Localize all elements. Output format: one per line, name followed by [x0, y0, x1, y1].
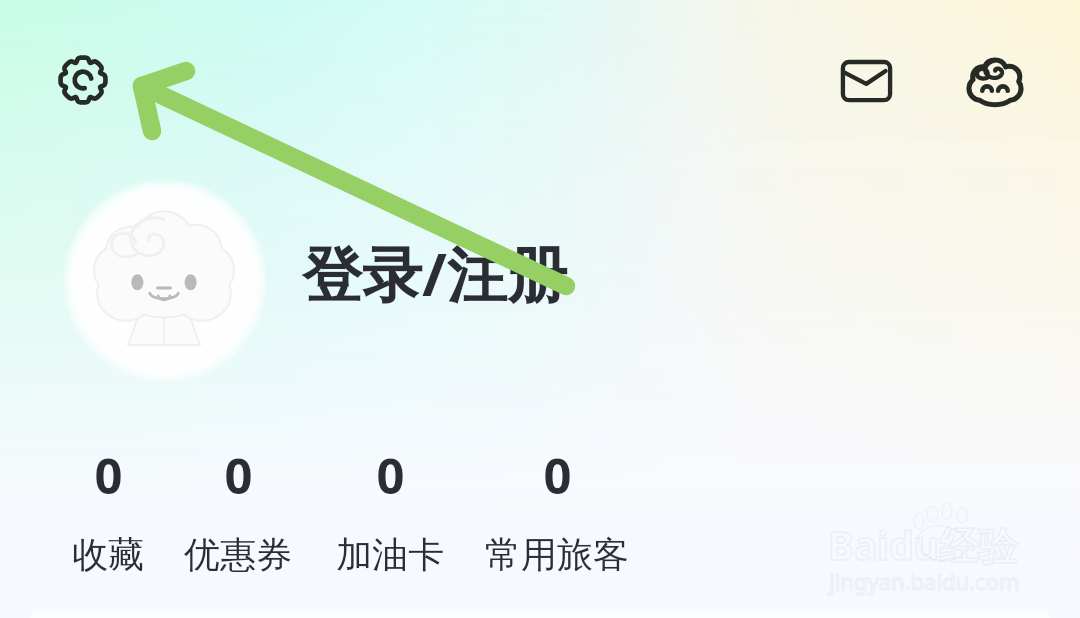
staticText: 常用旅客 — [485, 532, 629, 572]
button[interactable]: 登录/注册 — [300, 232, 569, 314]
staticText: 加油卡 — [336, 532, 444, 572]
staticText: 0 — [543, 442, 572, 509]
button[interactable]: 0 — [467, 442, 647, 572]
staticText: 优惠券 — [184, 532, 292, 572]
staticText: Baidu经验 — [828, 518, 1017, 571]
button[interactable]: 0 — [300, 442, 480, 572]
button[interactable]: Settings — [57, 54, 109, 106]
button[interactable]: Avatar — [62, 178, 268, 384]
staticText: 0 — [94, 442, 123, 509]
button[interactable]: 0 — [18, 442, 198, 572]
staticText: 0 — [376, 442, 405, 509]
staticText: 0 — [224, 442, 253, 509]
button[interactable]: 0 — [148, 442, 328, 572]
staticText: 收藏 — [72, 532, 144, 572]
staticText: jingyan.baidu.com — [829, 566, 1020, 596]
staticText: 登录/注册 — [302, 232, 567, 314]
button[interactable]: Messages — [840, 58, 893, 111]
button[interactable]: Customer service — [964, 52, 1026, 114]
